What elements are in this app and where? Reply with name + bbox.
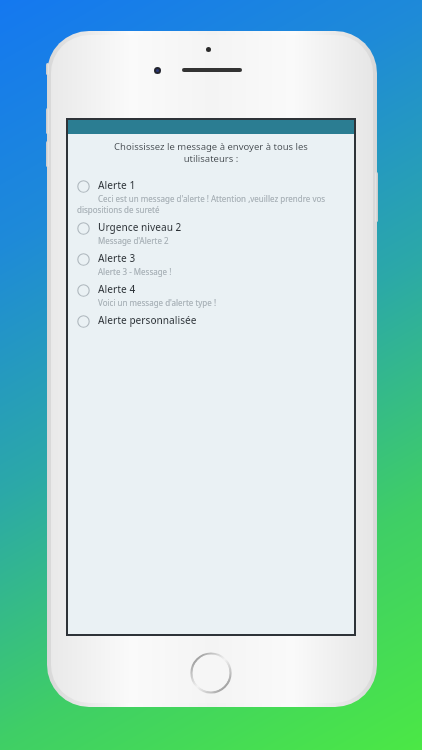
- button[interactable]: Alerte 3: [68, 248, 354, 279]
- button[interactable]: Alerte personnalisée: [68, 310, 354, 330]
- staticText: Alerte 3: [98, 251, 136, 265]
- staticText: Message d'Alerte 2: [77, 235, 333, 246]
- button[interactable]: Urgence niveau 2: [68, 217, 354, 248]
- staticText: Choississez le message à envoyer à tous …: [76, 140, 346, 165]
- staticText: Alerte 3 - Message !: [77, 266, 333, 277]
- button[interactable]: Home: [190, 652, 232, 694]
- button[interactable]: Alerte 4: [68, 279, 354, 310]
- staticText: Alerte 1: [98, 178, 136, 192]
- staticText: Voici un message d'alerte type !: [77, 297, 333, 308]
- staticText: Alerte personnalisée: [98, 313, 197, 327]
- staticText: Ceci est un message d'alerte ! Attention…: [77, 193, 333, 215]
- staticText: Alerte 4: [98, 282, 136, 296]
- staticText: Urgence niveau 2: [98, 220, 182, 234]
- button[interactable]: Alerte 1: [68, 175, 354, 217]
